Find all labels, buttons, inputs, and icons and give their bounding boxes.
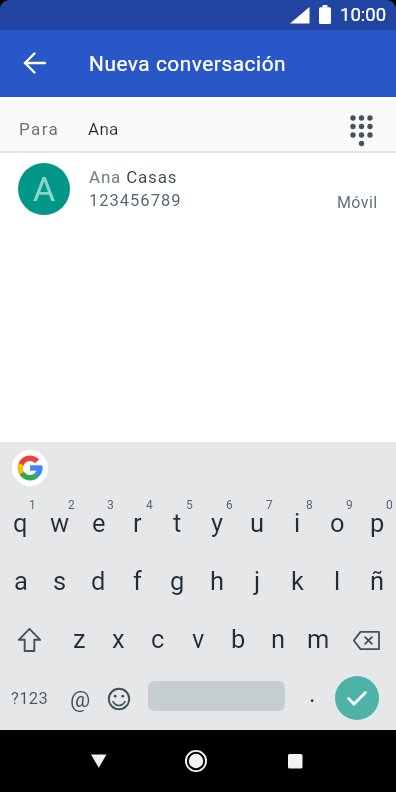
button[interactable] xyxy=(339,102,383,146)
staticText: Nueva conversación xyxy=(89,52,287,76)
staticText: Móvil xyxy=(337,193,378,212)
staticText: x xyxy=(112,624,125,654)
button[interactable]: d xyxy=(78,545,117,603)
button[interactable]: z xyxy=(59,603,98,661)
staticText: r xyxy=(133,508,142,538)
button[interactable] xyxy=(273,739,317,783)
button[interactable]: ?123 xyxy=(0,661,59,730)
staticText: c xyxy=(151,624,165,654)
staticText: 123456789 xyxy=(89,191,182,210)
staticText: s xyxy=(53,566,67,596)
staticText: d xyxy=(91,566,106,596)
staticText: w xyxy=(50,508,70,538)
button[interactable]: n xyxy=(257,603,297,661)
button[interactable]: q xyxy=(0,487,39,545)
button[interactable]: ñ xyxy=(356,545,396,603)
staticText: 3 xyxy=(107,498,114,512)
button[interactable]: f xyxy=(117,545,156,603)
button[interactable] xyxy=(13,41,57,85)
staticText: 8 xyxy=(306,498,313,512)
staticText: f xyxy=(133,566,142,596)
button[interactable]: Ana xyxy=(88,97,338,151)
button[interactable]: i xyxy=(276,487,316,545)
button[interactable]: x xyxy=(98,603,137,661)
staticText: g xyxy=(170,566,185,596)
button[interactable]: k xyxy=(276,545,316,603)
staticText: e xyxy=(92,508,106,538)
button[interactable]: h xyxy=(196,545,236,603)
staticText: 2 xyxy=(68,498,75,512)
button[interactable]: m xyxy=(297,603,337,661)
staticText: i xyxy=(294,508,301,538)
staticText: Ana Casas xyxy=(89,167,178,187)
button[interactable]: A xyxy=(0,156,396,220)
button[interactable]: t xyxy=(156,487,196,545)
staticText: k xyxy=(291,566,304,596)
staticText: h xyxy=(210,566,225,596)
staticText: z xyxy=(73,624,86,654)
button[interactable] xyxy=(337,603,396,661)
staticText: 7 xyxy=(266,498,273,512)
staticText: 4 xyxy=(146,498,153,512)
button[interactable]: u xyxy=(236,487,276,545)
staticText: Ana xyxy=(88,119,119,139)
button[interactable]: p xyxy=(356,487,396,545)
staticText: 10:00 xyxy=(340,4,387,26)
staticText: o xyxy=(330,508,345,538)
button[interactable]: j xyxy=(236,545,276,603)
button[interactable]: a xyxy=(0,545,39,603)
staticText: Para xyxy=(19,119,60,139)
staticText: 5 xyxy=(186,498,193,512)
button[interactable] xyxy=(0,603,59,661)
staticText: y xyxy=(211,508,224,538)
button[interactable]: w xyxy=(39,487,78,545)
button[interactable]: . xyxy=(297,661,327,730)
button[interactable]: e xyxy=(78,487,117,545)
button[interactable]: g xyxy=(156,545,196,603)
staticText: ñ xyxy=(370,566,385,596)
button[interactable] xyxy=(77,739,121,783)
staticText: l xyxy=(334,566,341,596)
staticText: . xyxy=(309,679,316,708)
button[interactable]: r xyxy=(117,487,156,545)
staticText: A xyxy=(33,169,56,209)
staticText: t xyxy=(173,508,182,538)
button[interactable]: @ xyxy=(59,661,99,730)
staticText: 0 xyxy=(386,498,393,512)
staticText: p xyxy=(370,508,385,538)
button[interactable]: s xyxy=(39,545,78,603)
staticText: q xyxy=(13,508,28,538)
staticText: 1 xyxy=(29,498,36,512)
staticText: 6 xyxy=(226,498,233,512)
button[interactable]: b xyxy=(217,603,257,661)
button[interactable]: y xyxy=(196,487,236,545)
button[interactable] xyxy=(335,676,379,720)
staticText: v xyxy=(192,624,205,654)
staticText: b xyxy=(231,624,246,654)
staticText: n xyxy=(271,624,286,654)
button[interactable]: v xyxy=(177,603,217,661)
button[interactable]: o xyxy=(316,487,356,545)
button[interactable]: l xyxy=(316,545,356,603)
staticText: a xyxy=(14,566,28,596)
staticText: ?123 xyxy=(11,689,49,708)
staticText: j xyxy=(254,566,261,596)
staticText: m xyxy=(307,624,330,654)
button[interactable] xyxy=(11,449,49,487)
staticText: 9 xyxy=(346,498,353,512)
button[interactable]: c xyxy=(137,603,177,661)
button[interactable] xyxy=(174,739,218,783)
staticText: @ xyxy=(70,686,91,712)
button[interactable] xyxy=(99,661,139,730)
staticText: u xyxy=(250,508,265,538)
